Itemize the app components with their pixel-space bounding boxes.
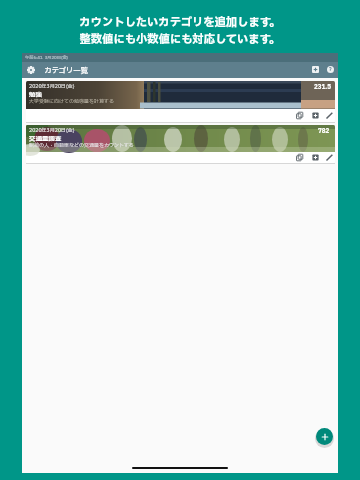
- button[interactable]: [323, 109, 335, 122]
- button[interactable]: [309, 151, 322, 163]
- staticText: ?: [329, 66, 332, 73]
- staticText: 大学受験に向けての勉強量を計算する: [29, 98, 114, 105]
- staticText: 782: [318, 127, 330, 136]
- button[interactable]: 2020年3月20日(金): [26, 125, 335, 163]
- staticText: 交通量調査: [29, 134, 62, 144]
- staticText: 231.5: [314, 83, 332, 92]
- staticText: カテゴリ一覧: [44, 65, 89, 76]
- staticText: 駅前の人・自動車などの交通量をカウントする: [29, 142, 134, 149]
- staticText: 午前6:41 3月20日(金): [25, 55, 69, 61]
- button[interactable]: [293, 109, 306, 122]
- button[interactable]: [312, 66, 319, 73]
- button[interactable]: [316, 428, 333, 445]
- staticText: カウントしたいカテゴリを追加します。: [79, 14, 281, 31]
- button[interactable]: [323, 151, 335, 163]
- staticText: 2020年3月20日(金): [29, 83, 75, 90]
- staticText: 勉強: [29, 90, 42, 100]
- button[interactable]: [27, 66, 35, 74]
- button[interactable]: ?: [327, 66, 334, 73]
- button[interactable]: [309, 109, 322, 122]
- button[interactable]: [293, 151, 306, 163]
- staticText: 2020年3月20日(金): [29, 127, 75, 134]
- button[interactable]: 2020年3月20日(金): [26, 81, 335, 122]
- staticText: 整数値にも小数値にも対応しています。: [79, 31, 281, 48]
